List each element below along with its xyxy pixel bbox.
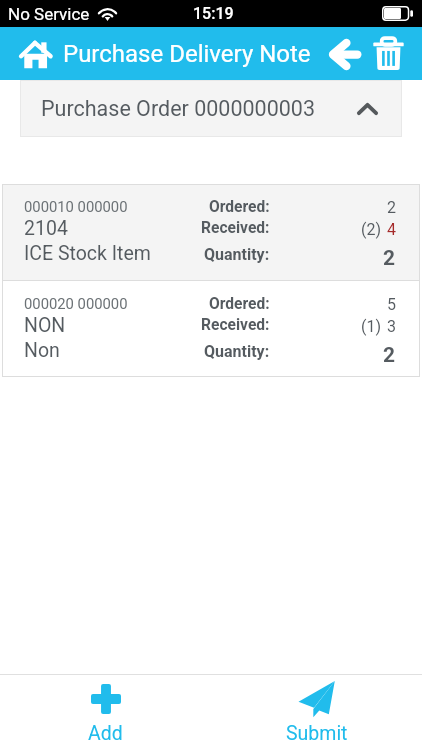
- staticText: 2: [383, 246, 396, 271]
- staticText: ICE Stock Item: [24, 242, 151, 265]
- staticText: Quantity:: [204, 245, 270, 264]
- button[interactable]: Purchase Order 0000000003: [20, 80, 402, 137]
- button[interactable]: Home: [17, 35, 55, 73]
- staticText: 2: [383, 343, 396, 368]
- staticText: Received:: [201, 316, 270, 334]
- staticText: (2): [361, 220, 382, 239]
- staticText: 2104: [24, 217, 68, 240]
- staticText: Purchase Order 0000000003: [41, 96, 315, 121]
- staticText: Non: [24, 339, 60, 362]
- staticText: Ordered:: [209, 295, 270, 313]
- button[interactable]: 000010 000000: [2, 184, 420, 280]
- staticText: Add: [88, 722, 123, 745]
- staticText: Quantity:: [204, 342, 270, 361]
- staticText: 3: [387, 317, 396, 336]
- button[interactable]: Back: [322, 32, 366, 76]
- staticText: 000020 000000: [24, 295, 128, 312]
- staticText: Purchase Delivery Note: [63, 40, 311, 68]
- button[interactable]: 000020 000000: [2, 281, 420, 377]
- button[interactable]: Submit: [211, 675, 422, 750]
- button[interactable]: Add: [0, 675, 211, 750]
- staticText: 4: [387, 220, 396, 239]
- staticText: 000010 000000: [24, 198, 128, 215]
- staticText: Received:: [201, 219, 270, 237]
- staticText: 5: [387, 295, 396, 314]
- staticText: 2: [387, 198, 396, 217]
- staticText: Submit: [286, 722, 348, 745]
- staticText: No Service: [8, 4, 90, 24]
- button[interactable]: Delete: [366, 32, 410, 76]
- staticText: Ordered:: [209, 198, 270, 216]
- staticText: 15:19: [193, 4, 234, 23]
- staticText: NON: [24, 314, 66, 337]
- staticText: (1): [361, 317, 382, 336]
